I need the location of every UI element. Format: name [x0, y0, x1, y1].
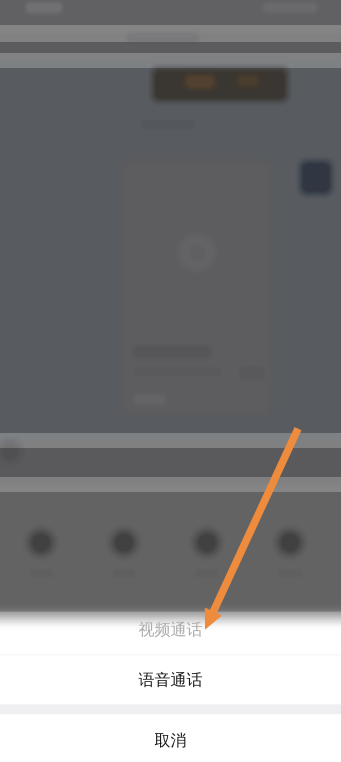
- staticText: 视频通话: [138, 620, 202, 639]
- button[interactable]: 视频通话: [0, 605, 341, 655]
- button[interactable]: 取消: [0, 714, 341, 762]
- button[interactable]: 语音通话: [0, 655, 341, 704]
- staticText: 语音通话: [138, 670, 202, 690]
- staticText: 取消: [154, 730, 186, 750]
